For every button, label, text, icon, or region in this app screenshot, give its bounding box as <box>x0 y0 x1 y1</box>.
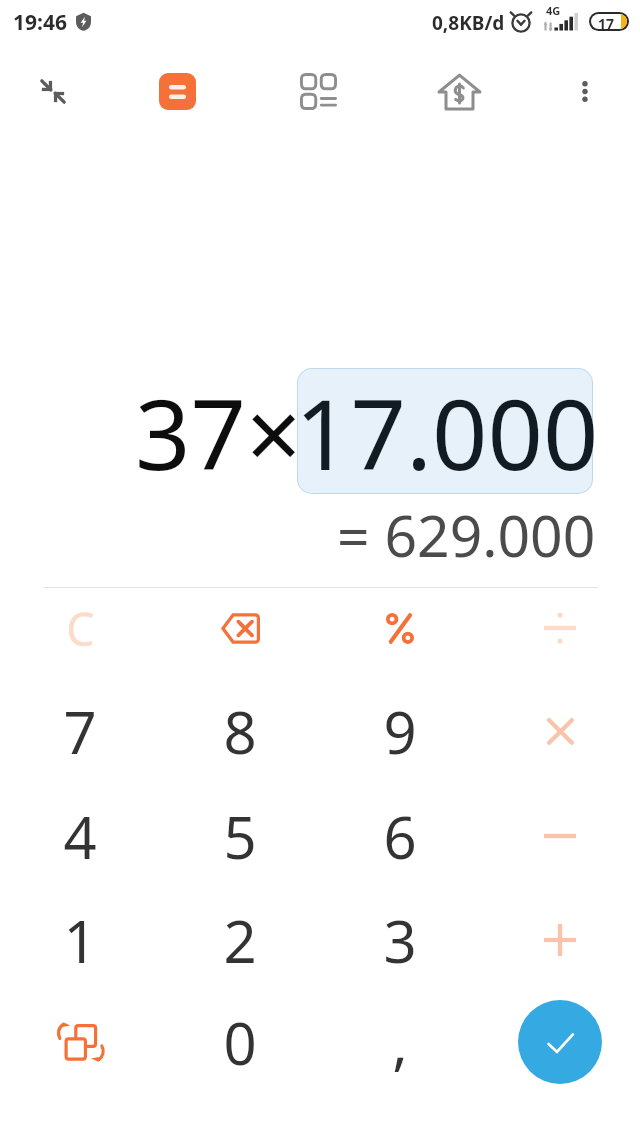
button[interactable]: 9 <box>320 681 480 781</box>
button[interactable]: 8 <box>160 681 320 781</box>
staticText: C <box>66 598 95 659</box>
button[interactable]: 5 <box>160 786 320 886</box>
staticText: 9 <box>383 692 417 771</box>
staticText: 2 <box>223 901 257 980</box>
button[interactable]: 1 <box>0 890 160 990</box>
staticText: = 629.000 <box>337 496 596 574</box>
staticText: 4G <box>546 3 561 18</box>
button[interactable]: More options <box>530 55 640 128</box>
button[interactable]: Equals <box>518 1000 602 1084</box>
button[interactable]: Divide <box>480 578 640 678</box>
button[interactable]: 4 <box>0 786 160 886</box>
staticText: 19:46 <box>13 8 67 37</box>
button[interactable]: Plus <box>480 890 640 990</box>
staticText: 0 <box>223 1003 257 1082</box>
staticText: 3 <box>383 901 417 980</box>
staticText: 17.000 <box>295 366 599 498</box>
staticText: 5 <box>223 797 257 876</box>
staticText: 4 <box>63 797 97 876</box>
staticText: 8 <box>223 692 257 771</box>
staticText: 17 <box>598 14 615 29</box>
staticText: 37× <box>135 366 302 498</box>
button[interactable]: 6 <box>320 786 480 886</box>
button[interactable]: Minus <box>480 786 640 886</box>
button[interactable]: 2 <box>160 890 320 990</box>
button[interactable]: Collapse <box>0 55 106 128</box>
staticText: 0,8KB/d <box>432 10 505 36</box>
button[interactable]: Converters <box>248 55 388 128</box>
button[interactable]: 3 <box>320 890 480 990</box>
staticText: 1 <box>63 901 97 980</box>
button[interactable]: Clear <box>0 578 160 678</box>
button[interactable]: Calculator <box>106 55 248 128</box>
button[interactable] <box>298 369 592 493</box>
button[interactable]: 7 <box>0 681 160 781</box>
button[interactable]: 0 <box>160 992 320 1092</box>
button[interactable]: Mortgage <box>388 55 530 128</box>
button[interactable]: Percent <box>320 578 480 678</box>
staticText: 6 <box>383 797 417 876</box>
button[interactable]: Convert <box>0 992 160 1092</box>
button[interactable]: Equals <box>480 992 640 1092</box>
button[interactable]: Multiply <box>480 681 640 781</box>
staticText: , <box>392 1002 408 1081</box>
staticText: 7 <box>63 692 97 771</box>
button[interactable]: Comma <box>320 992 480 1092</box>
button[interactable]: Backspace <box>160 578 320 678</box>
